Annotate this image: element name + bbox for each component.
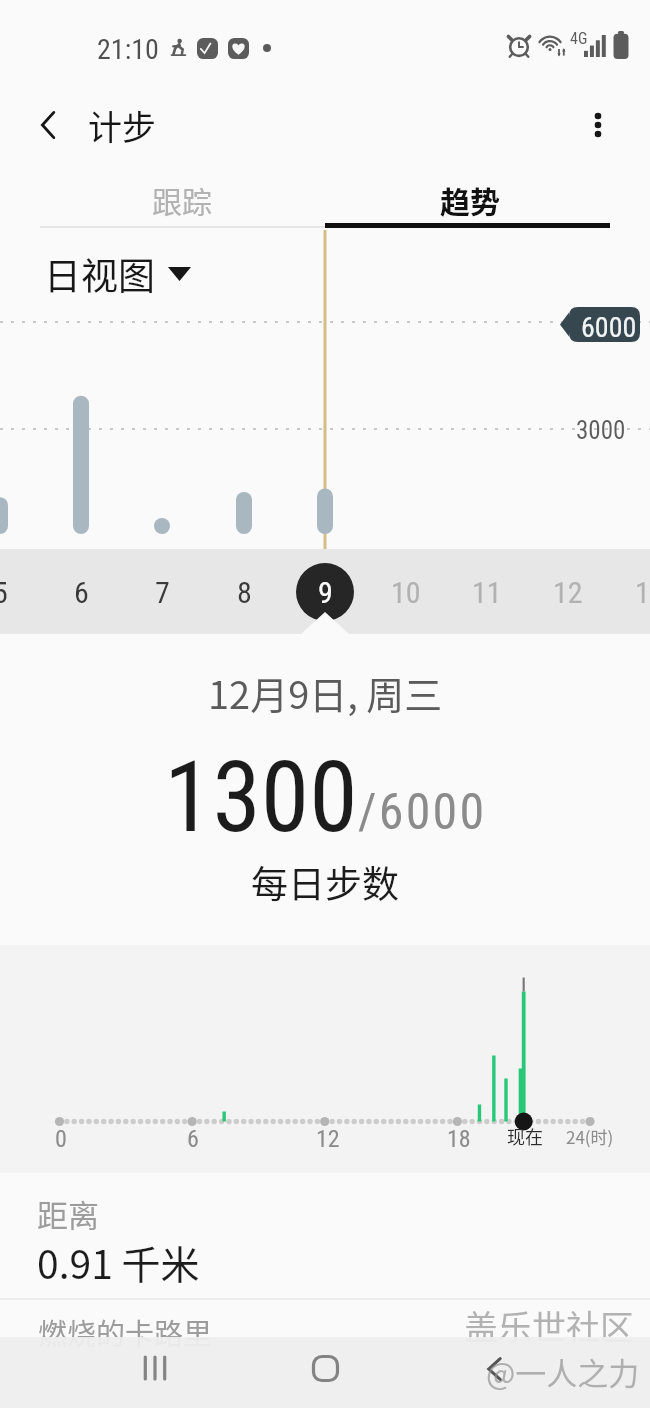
button[interactable]: Recent apps — [120, 1332, 190, 1403]
staticText: 12月9日, 周三 — [208, 665, 443, 720]
button[interactable]: 日视图 — [44, 247, 191, 301]
staticText: 10 — [391, 575, 421, 610]
button[interactable]: 趋势 — [325, 154, 614, 230]
button[interactable]: 燃烧的卡路里 — [38, 1311, 213, 1353]
staticText: 7 — [155, 575, 170, 610]
staticText: 12 — [553, 575, 583, 610]
staticText: 24(时) — [566, 1124, 614, 1149]
staticText: 12 — [316, 1125, 340, 1153]
staticText: 现在 — [507, 1123, 543, 1149]
staticText: /6000 — [358, 783, 487, 842]
staticText: 距离 — [37, 1191, 99, 1236]
button[interactable]: Back — [460, 1333, 530, 1404]
staticText: 计步 — [88, 101, 156, 150]
staticText: 0.91 千米 — [37, 1234, 200, 1290]
staticText: 9 — [318, 575, 333, 610]
staticText: 13 — [635, 575, 650, 610]
button[interactable]: 13 — [610, 552, 650, 632]
staticText: 18 — [447, 1125, 471, 1153]
button[interactable]: 10 — [366, 552, 446, 632]
button[interactable]: 跟踪 — [40, 154, 323, 230]
staticText: @一人之力 — [486, 1349, 640, 1394]
button[interactable]: 9 — [285, 552, 365, 632]
button[interactable]: 距离 — [37, 1191, 650, 1292]
button[interactable]: 8 — [204, 552, 284, 632]
button[interactable]: Back — [24, 100, 74, 150]
button[interactable]: 5 — [0, 552, 40, 632]
staticText: 1300 — [164, 740, 358, 855]
button[interactable]: 6 — [41, 552, 121, 632]
staticText: 盖乐世社区 — [464, 1301, 634, 1350]
staticText: 21:10 — [97, 33, 159, 66]
staticText: 5 — [0, 575, 8, 610]
staticText: 跟踪 — [152, 178, 212, 221]
staticText: 3000 — [576, 416, 626, 445]
staticText: 11 — [472, 575, 502, 610]
staticText: 6000 — [581, 311, 637, 344]
button[interactable]: More options — [573, 100, 623, 150]
staticText: 8 — [237, 575, 252, 610]
button[interactable]: 12 — [528, 552, 608, 632]
staticText: 6 — [74, 575, 89, 610]
staticText: 每日步数 — [251, 855, 399, 909]
button[interactable]: 11 — [447, 552, 527, 632]
staticText: 4G — [570, 29, 588, 48]
button[interactable]: 7 — [122, 552, 202, 632]
staticText: 0 — [55, 1125, 67, 1153]
staticText: 日视图 — [44, 247, 155, 301]
button[interactable]: Home — [290, 1333, 360, 1404]
staticText: 趋势 — [440, 178, 500, 221]
staticText: 6 — [187, 1125, 199, 1153]
